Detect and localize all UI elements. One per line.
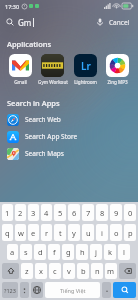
button[interactable]: Zing MP3 xyxy=(102,52,133,87)
staticText: m xyxy=(107,266,115,276)
button[interactable]: Search xyxy=(113,282,136,298)
button[interactable]: Period xyxy=(102,282,111,298)
staticText: Gym Workout xyxy=(38,79,68,85)
button[interactable]: x xyxy=(35,263,47,279)
staticText: Cancel xyxy=(109,18,130,27)
button[interactable]: q xyxy=(2,224,13,241)
staticText: Lr xyxy=(81,59,91,73)
button[interactable]: 8 xyxy=(96,204,108,221)
button[interactable]: ?123 xyxy=(2,282,18,298)
button[interactable]: c xyxy=(49,263,61,279)
button[interactable]: Search App Store xyxy=(0,128,138,145)
button[interactable]: s xyxy=(20,244,32,260)
staticText: Tiếng Việt xyxy=(60,287,86,294)
button[interactable]: 4 xyxy=(41,204,52,221)
button[interactable]: Lr xyxy=(70,52,101,87)
button[interactable]: b xyxy=(77,263,89,279)
button[interactable]: z xyxy=(21,263,33,279)
button[interactable]: Tiếng Việt xyxy=(45,282,100,298)
staticText: d xyxy=(38,247,43,257)
button[interactable]: g xyxy=(62,244,74,260)
staticText: Zing MP3 xyxy=(107,79,128,85)
staticText: Search in Apps xyxy=(7,98,60,108)
staticText: 5 xyxy=(58,208,63,218)
button[interactable]: y xyxy=(68,224,80,241)
button[interactable]: Voice search xyxy=(93,15,107,29)
button[interactable]: 6 xyxy=(68,204,80,221)
button[interactable]: l xyxy=(118,244,130,260)
button[interactable]: p xyxy=(124,224,136,241)
staticText: b xyxy=(81,266,86,276)
staticText: u xyxy=(86,228,91,238)
button[interactable]: Change language xyxy=(31,282,43,298)
staticText: Lightroom xyxy=(74,79,97,85)
staticText: z xyxy=(25,266,29,276)
button[interactable]: Search Web xyxy=(0,111,138,128)
button[interactable]: Gmail xyxy=(5,52,36,87)
staticText: 3 xyxy=(31,208,36,218)
button[interactable]: k xyxy=(104,244,116,260)
button[interactable]: m xyxy=(105,263,117,279)
staticText: o xyxy=(114,228,119,238)
button[interactable]: d xyxy=(34,244,46,260)
button[interactable]: Cancel xyxy=(107,16,132,29)
staticText: w xyxy=(18,228,24,238)
staticText: 0 xyxy=(128,208,133,218)
staticText: r xyxy=(45,228,49,238)
button[interactable]: e xyxy=(28,224,39,241)
button[interactable]: 5 xyxy=(54,204,66,221)
staticText: f xyxy=(53,247,56,257)
staticText: g xyxy=(66,247,71,257)
button[interactable]: r xyxy=(41,224,52,241)
staticText: Applications xyxy=(7,39,52,49)
button[interactable]: h xyxy=(76,244,88,260)
staticText: 8 xyxy=(100,208,105,218)
staticText: x xyxy=(39,266,43,276)
button[interactable]: j xyxy=(90,244,102,260)
button[interactable]: 0 xyxy=(124,204,136,221)
button[interactable]: f xyxy=(48,244,60,260)
staticText: n xyxy=(95,266,100,276)
button[interactable]: Gym Workout xyxy=(37,52,68,87)
staticText: h xyxy=(80,247,85,257)
button[interactable]: w xyxy=(15,224,26,241)
button[interactable]: Comma xyxy=(20,282,29,298)
button[interactable]: a xyxy=(7,244,18,260)
button[interactable]: o xyxy=(110,224,122,241)
button[interactable]: v xyxy=(63,263,75,279)
staticText: 2 xyxy=(18,208,23,218)
staticText: Gmail xyxy=(14,79,27,85)
button[interactable]: u xyxy=(82,224,94,241)
button[interactable]: Search Maps xyxy=(0,145,138,162)
button[interactable]: Gm xyxy=(6,12,93,32)
button[interactable]: 1 xyxy=(2,204,13,221)
staticText: 1 xyxy=(5,208,10,218)
staticText: 6 xyxy=(72,208,77,218)
staticText: Search App Store xyxy=(25,132,78,141)
button[interactable]: i xyxy=(96,224,108,241)
button[interactable]: Backspace xyxy=(119,263,136,279)
staticText: p xyxy=(128,228,133,238)
staticText: 9 xyxy=(114,208,119,218)
staticText: y xyxy=(72,228,76,238)
staticText: 4 xyxy=(44,208,49,218)
staticText: a xyxy=(10,247,15,257)
staticText: q xyxy=(5,228,10,238)
staticText: j xyxy=(95,247,97,257)
button[interactable]: 7 xyxy=(82,204,94,221)
staticText: l xyxy=(123,247,125,257)
staticText: 7 xyxy=(86,208,91,218)
staticText: c xyxy=(53,266,57,276)
staticText: k xyxy=(108,247,113,257)
button[interactable]: 2 xyxy=(15,204,26,221)
button[interactable]: Shift xyxy=(2,263,19,279)
button[interactable]: 3 xyxy=(28,204,39,221)
staticText: Search Maps xyxy=(25,149,64,158)
staticText: Search Web xyxy=(25,115,61,124)
staticText: i xyxy=(101,228,103,238)
button[interactable]: t xyxy=(54,224,66,241)
button[interactable]: n xyxy=(91,263,103,279)
button[interactable]: 9 xyxy=(110,204,122,221)
staticText: v xyxy=(67,266,71,276)
staticText: t xyxy=(59,228,62,238)
